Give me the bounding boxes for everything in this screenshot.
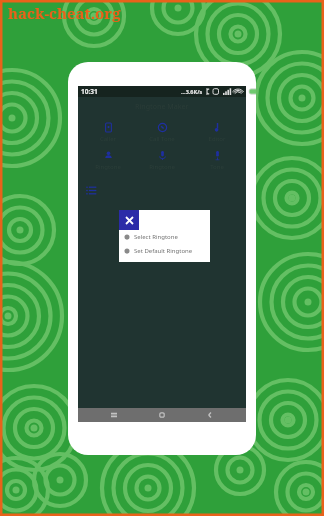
button[interactable]: Close	[119, 210, 139, 230]
button[interactable]: Back	[198, 408, 222, 422]
staticText: Set Default Ringtone	[134, 247, 193, 255]
button[interactable]: Ringtone	[137, 151, 187, 171]
button[interactable]: Caller	[83, 123, 133, 143]
button[interactable]: Select Ringtone	[124, 230, 210, 244]
button[interactable]: Ringtone	[83, 151, 133, 171]
staticText: Select Ringtone	[134, 233, 178, 241]
button[interactable]: Editor	[192, 123, 242, 143]
button[interactable]: Call Tone	[137, 123, 187, 143]
button[interactable]: Tone	[192, 151, 242, 171]
staticText: hack-cheat.org	[8, 3, 121, 23]
button[interactable]: Menu	[102, 408, 126, 422]
button[interactable]: Home	[150, 408, 174, 422]
staticText: 10:31	[81, 87, 98, 96]
staticText: ...3.6K/s	[181, 88, 203, 95]
button[interactable]: Set Default Ringtone	[124, 244, 210, 258]
button[interactable]: List	[83, 182, 99, 198]
